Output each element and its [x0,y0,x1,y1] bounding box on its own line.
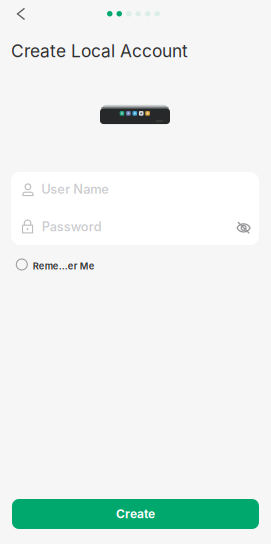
button[interactable]: Show password [230,214,258,242]
staticText: Create [116,507,155,521]
staticText: Create Local Account [11,40,188,61]
button[interactable]: Reme...er Me [16,255,126,274]
button[interactable]: Back [6,0,36,28]
staticText: Reme...er Me [33,260,95,272]
staticText: User Name [41,181,109,197]
button[interactable]: Create [12,499,259,529]
staticText: Password [42,219,102,234]
